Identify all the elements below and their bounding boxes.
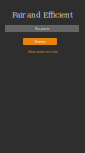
staticText: Fair and Efficient: [12, 10, 73, 19]
staticText: View web version: [27, 49, 57, 54]
staticText: No posts: [34, 26, 49, 31]
button[interactable]: View web version: [0, 49, 85, 54]
staticText: Home: [34, 39, 45, 44]
button[interactable]: Home: [23, 38, 57, 45]
